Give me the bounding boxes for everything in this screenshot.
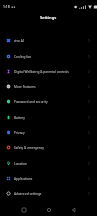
- button[interactable]: Location: [0, 156, 97, 171]
- staticText: Password and security: [14, 100, 48, 104]
- button[interactable]: Digital Wellbeing & parental controls: [0, 64, 97, 79]
- button[interactable]: Password and security: [0, 94, 97, 109]
- staticText: Battery: [14, 116, 25, 120]
- staticText: More Features: [14, 85, 36, 89]
- button[interactable]: Privacy: [0, 125, 97, 140]
- staticText: Applications: [14, 177, 33, 181]
- button[interactable]: Advanced settings: [0, 186, 97, 201]
- button[interactable]: Recent apps: [16, 202, 32, 216]
- button[interactable]: Safety & emergency: [0, 140, 97, 155]
- staticText: Privacy: [14, 131, 25, 135]
- staticText: Location: [14, 162, 27, 166]
- staticText: vivo AI: [14, 39, 24, 43]
- button[interactable]: vivo AI: [0, 33, 97, 48]
- button[interactable]: Home: [41, 202, 57, 216]
- staticText: Advanced settings: [14, 192, 42, 196]
- button[interactable]: Cooling fan: [0, 49, 97, 64]
- staticText: Settings: [40, 15, 57, 21]
- staticText: Cooling fan: [14, 55, 32, 59]
- staticText: Safety & emergency: [14, 146, 44, 150]
- button[interactable]: More Features: [0, 79, 97, 94]
- button[interactable]: Back: [65, 202, 81, 216]
- button[interactable]: Battery: [0, 110, 97, 125]
- staticText: 1:18: [3, 4, 10, 9]
- button[interactable]: Applications: [0, 171, 97, 186]
- staticText: Digital Wellbeing & parental controls: [14, 70, 69, 74]
